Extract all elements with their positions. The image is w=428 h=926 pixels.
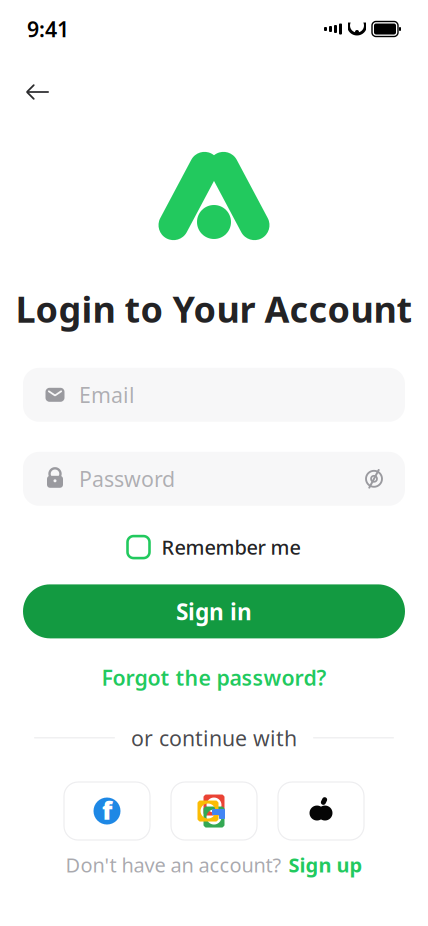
- staticText: Don't have an account?: [65, 851, 281, 878]
- staticText: Forgot the password?: [101, 663, 326, 692]
- button[interactable]: Remember me: [121, 526, 306, 568]
- button[interactable]: Forgot the password?: [91, 656, 336, 699]
- button[interactable]: Sign in with Apple: [278, 782, 364, 840]
- staticText: Sign up: [288, 851, 362, 878]
- button[interactable]: Sign in with Google: [171, 782, 257, 840]
- button[interactable]: Show password: [357, 462, 391, 496]
- staticText: Login to Your Account: [15, 285, 412, 333]
- staticText: 9:41: [27, 15, 69, 43]
- staticText: Sign in: [176, 596, 252, 626]
- button[interactable]: Sign up: [288, 847, 362, 882]
- staticText: or continue with: [131, 724, 297, 752]
- staticText: Remember me: [161, 534, 300, 560]
- staticText: Email: [79, 381, 135, 409]
- button[interactable]: Back: [16, 70, 60, 114]
- button[interactable]: Sign in with Facebook: [64, 782, 150, 840]
- staticText: Password: [79, 465, 175, 493]
- button[interactable]: Sign in: [0, 584, 428, 638]
- staticText: f: [102, 793, 112, 827]
